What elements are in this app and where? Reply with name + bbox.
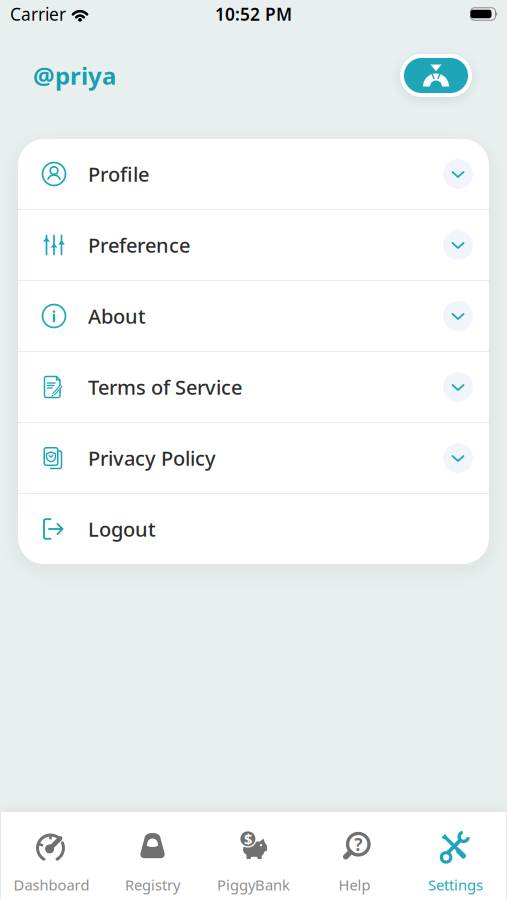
staticText: Carrier [10, 2, 66, 25]
button[interactable]: $ [203, 812, 304, 900]
staticText: Preference [88, 232, 190, 258]
staticText: About [88, 303, 146, 329]
staticText: ? [354, 833, 362, 856]
button[interactable]: Settings [405, 812, 506, 900]
button[interactable]: Dashboard [1, 812, 102, 900]
button[interactable]: Profile [400, 54, 472, 97]
staticText: Help [338, 875, 370, 894]
button[interactable]: About [18, 281, 489, 351]
button[interactable]: ? [304, 812, 405, 900]
button[interactable]: Logout [18, 494, 489, 564]
staticText: Dashboard [13, 875, 89, 894]
button[interactable]: Preference [18, 210, 489, 280]
staticText: 10:52 PM [215, 2, 292, 25]
button[interactable]: Terms of Service [18, 352, 489, 422]
staticText: Logout [88, 516, 156, 542]
staticText: PiggyBank [217, 875, 290, 894]
button[interactable]: Registry [102, 812, 203, 900]
button[interactable]: Privacy Policy [18, 423, 489, 493]
staticText: Terms of Service [88, 374, 242, 400]
staticText: Registry [125, 875, 180, 894]
staticText: @priya [33, 60, 116, 91]
staticText: Privacy Policy [88, 445, 216, 471]
staticText: $ [244, 829, 252, 849]
staticText: Profile [88, 161, 149, 187]
staticText: Settings [428, 875, 483, 894]
button[interactable]: Profile [18, 139, 489, 209]
